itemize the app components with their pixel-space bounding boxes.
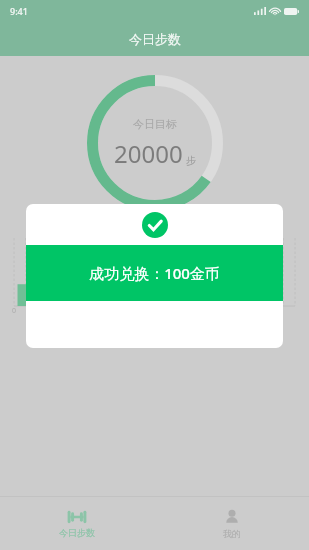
staticText: 步 bbox=[186, 154, 196, 167]
button[interactable]: 今日步数 bbox=[0, 497, 154, 550]
staticText: 今日目标 bbox=[133, 117, 177, 131]
staticText: 今日步数 bbox=[59, 527, 95, 538]
staticText: 0 bbox=[12, 306, 17, 316]
staticText: 20000 bbox=[114, 137, 183, 170]
button[interactable]: 成功兑换：100金币 bbox=[26, 245, 283, 301]
staticText: 我的 bbox=[223, 528, 241, 539]
staticText: 成功兑换：100金币 bbox=[89, 263, 220, 283]
staticText: 9:41 bbox=[10, 5, 28, 17]
staticText: 今日步数 bbox=[129, 31, 181, 47]
button[interactable]: 我的 bbox=[154, 497, 309, 550]
